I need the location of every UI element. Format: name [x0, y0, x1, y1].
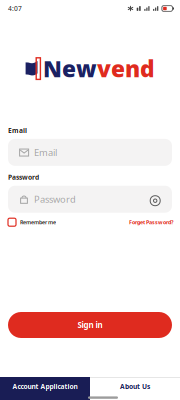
staticText: About Us	[120, 382, 150, 391]
staticText: Account Application	[12, 382, 77, 391]
staticText: Email	[8, 126, 27, 135]
staticText: Remember me	[20, 219, 56, 226]
button[interactable]: Forget Password?	[129, 219, 174, 226]
button[interactable]: Password	[8, 186, 172, 213]
button[interactable]: Account Application	[0, 377, 90, 400]
button[interactable]: Remember me	[8, 218, 56, 226]
staticText: Sign in	[77, 320, 102, 330]
button[interactable]: About Us	[90, 377, 180, 400]
staticText: Password	[8, 173, 39, 182]
staticText: Forget Password?	[129, 219, 174, 226]
button[interactable]: Sign in	[8, 312, 172, 338]
staticText: New	[43, 53, 97, 83]
staticText: vend	[97, 53, 155, 83]
staticText: 4:07	[8, 4, 22, 13]
staticText: Email	[34, 146, 57, 159]
button[interactable]: Email	[8, 139, 172, 166]
staticText: Password	[34, 193, 76, 205]
button[interactable]: Show password	[149, 193, 161, 205]
